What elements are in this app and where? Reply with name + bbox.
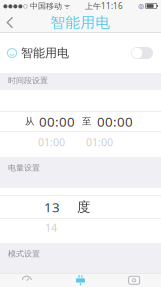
staticText: 度 bbox=[77, 199, 90, 215]
staticText: 至 bbox=[82, 116, 91, 127]
staticText: ●●●●○ bbox=[3, 3, 28, 9]
staticText: 00:00 bbox=[97, 113, 133, 130]
staticText: ◎ bbox=[138, 2, 144, 10]
button[interactable]: 智能用电 bbox=[0, 33, 161, 73]
staticText: 14 bbox=[45, 220, 57, 235]
staticText: 模式设置 bbox=[8, 249, 40, 259]
button[interactable]: 用电概览 bbox=[0, 273, 54, 287]
staticText: 从 bbox=[25, 116, 34, 127]
staticText: 上午11:16 bbox=[85, 1, 123, 11]
staticText: 电量设置 bbox=[8, 163, 40, 173]
staticText: 智能用电 bbox=[21, 46, 69, 60]
staticText: 01:00 bbox=[38, 135, 65, 149]
button[interactable]: 我的 bbox=[107, 273, 161, 287]
staticText: 中国移动 bbox=[28, 1, 62, 11]
staticText: 00:00 bbox=[39, 113, 75, 130]
staticText: 13 bbox=[44, 198, 60, 216]
button[interactable]: 智能用电 bbox=[54, 273, 107, 287]
button[interactable]: 返回 bbox=[0, 12, 22, 33]
staticText: 01:00 bbox=[86, 135, 113, 149]
staticText: ᯤ bbox=[62, 2, 70, 10]
staticText: 时间段设置 bbox=[8, 76, 48, 85]
staticText: 智能用电 bbox=[50, 13, 110, 31]
